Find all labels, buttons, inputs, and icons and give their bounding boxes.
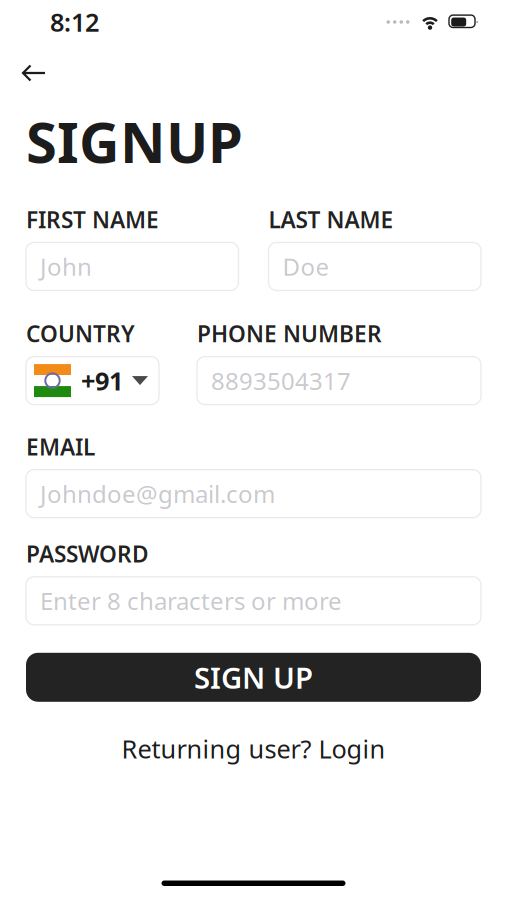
button[interactable]: Doe bbox=[268, 242, 481, 290]
staticText: SIGNUP bbox=[26, 104, 243, 178]
button[interactable]: Returning user? Login bbox=[111, 726, 395, 771]
staticText: Enter 8 characters or more bbox=[40, 585, 342, 617]
button[interactable]: Enter 8 characters or more bbox=[26, 577, 481, 625]
staticText: John bbox=[40, 250, 92, 282]
staticText: EMAIL bbox=[26, 432, 95, 462]
staticText: Doe bbox=[282, 250, 329, 282]
staticText: +91 bbox=[81, 364, 123, 397]
staticText: 8:12 bbox=[50, 5, 99, 39]
button[interactable]: Back bbox=[0, 58, 46, 88]
button[interactable]: 8893504317 bbox=[197, 357, 481, 405]
staticText: LAST NAME bbox=[268, 204, 393, 234]
staticText: 8893504317 bbox=[211, 365, 351, 396]
staticText: Returning user? Login bbox=[121, 732, 385, 765]
staticText: FIRST NAME bbox=[26, 204, 159, 234]
staticText: SIGN UP bbox=[194, 658, 313, 697]
staticText: PASSWORD bbox=[26, 539, 149, 569]
staticText: COUNTRY bbox=[26, 318, 135, 349]
button[interactable]: Johndoe@gmail.com bbox=[26, 470, 481, 518]
staticText: PHONE NUMBER bbox=[197, 318, 382, 349]
button[interactable]: SIGN UP bbox=[26, 653, 481, 702]
staticText: Johndoe@gmail.com bbox=[40, 478, 275, 510]
button[interactable]: John bbox=[26, 242, 238, 290]
button[interactable]: +91 bbox=[26, 357, 159, 405]
